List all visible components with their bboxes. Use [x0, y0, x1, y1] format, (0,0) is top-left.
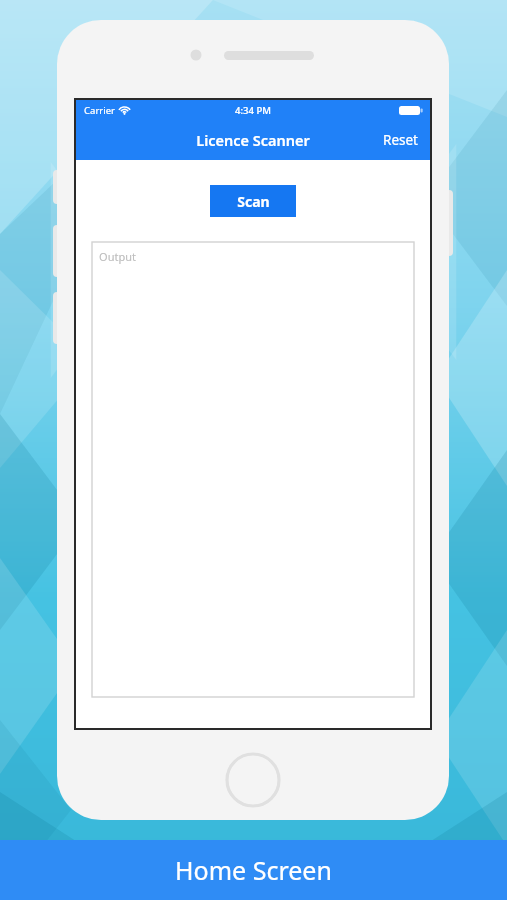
other: Home [225, 752, 281, 808]
button[interactable]: Output [92, 242, 414, 697]
staticText: Home Screen [175, 853, 332, 887]
staticText: Licence Scanner [196, 130, 310, 150]
button[interactable]: Reset [371, 123, 430, 157]
staticText: 4:34 PM [235, 104, 271, 117]
button[interactable]: Scan [210, 185, 296, 217]
staticText: Scan [237, 192, 270, 211]
staticText: Reset [383, 131, 418, 149]
staticText: Carrier [84, 104, 115, 117]
button[interactable]: Home Screen [0, 840, 507, 900]
staticText: Output [99, 249, 136, 264]
